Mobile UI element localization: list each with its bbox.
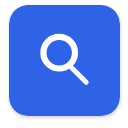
button[interactable]: Search	[9, 5, 120, 116]
